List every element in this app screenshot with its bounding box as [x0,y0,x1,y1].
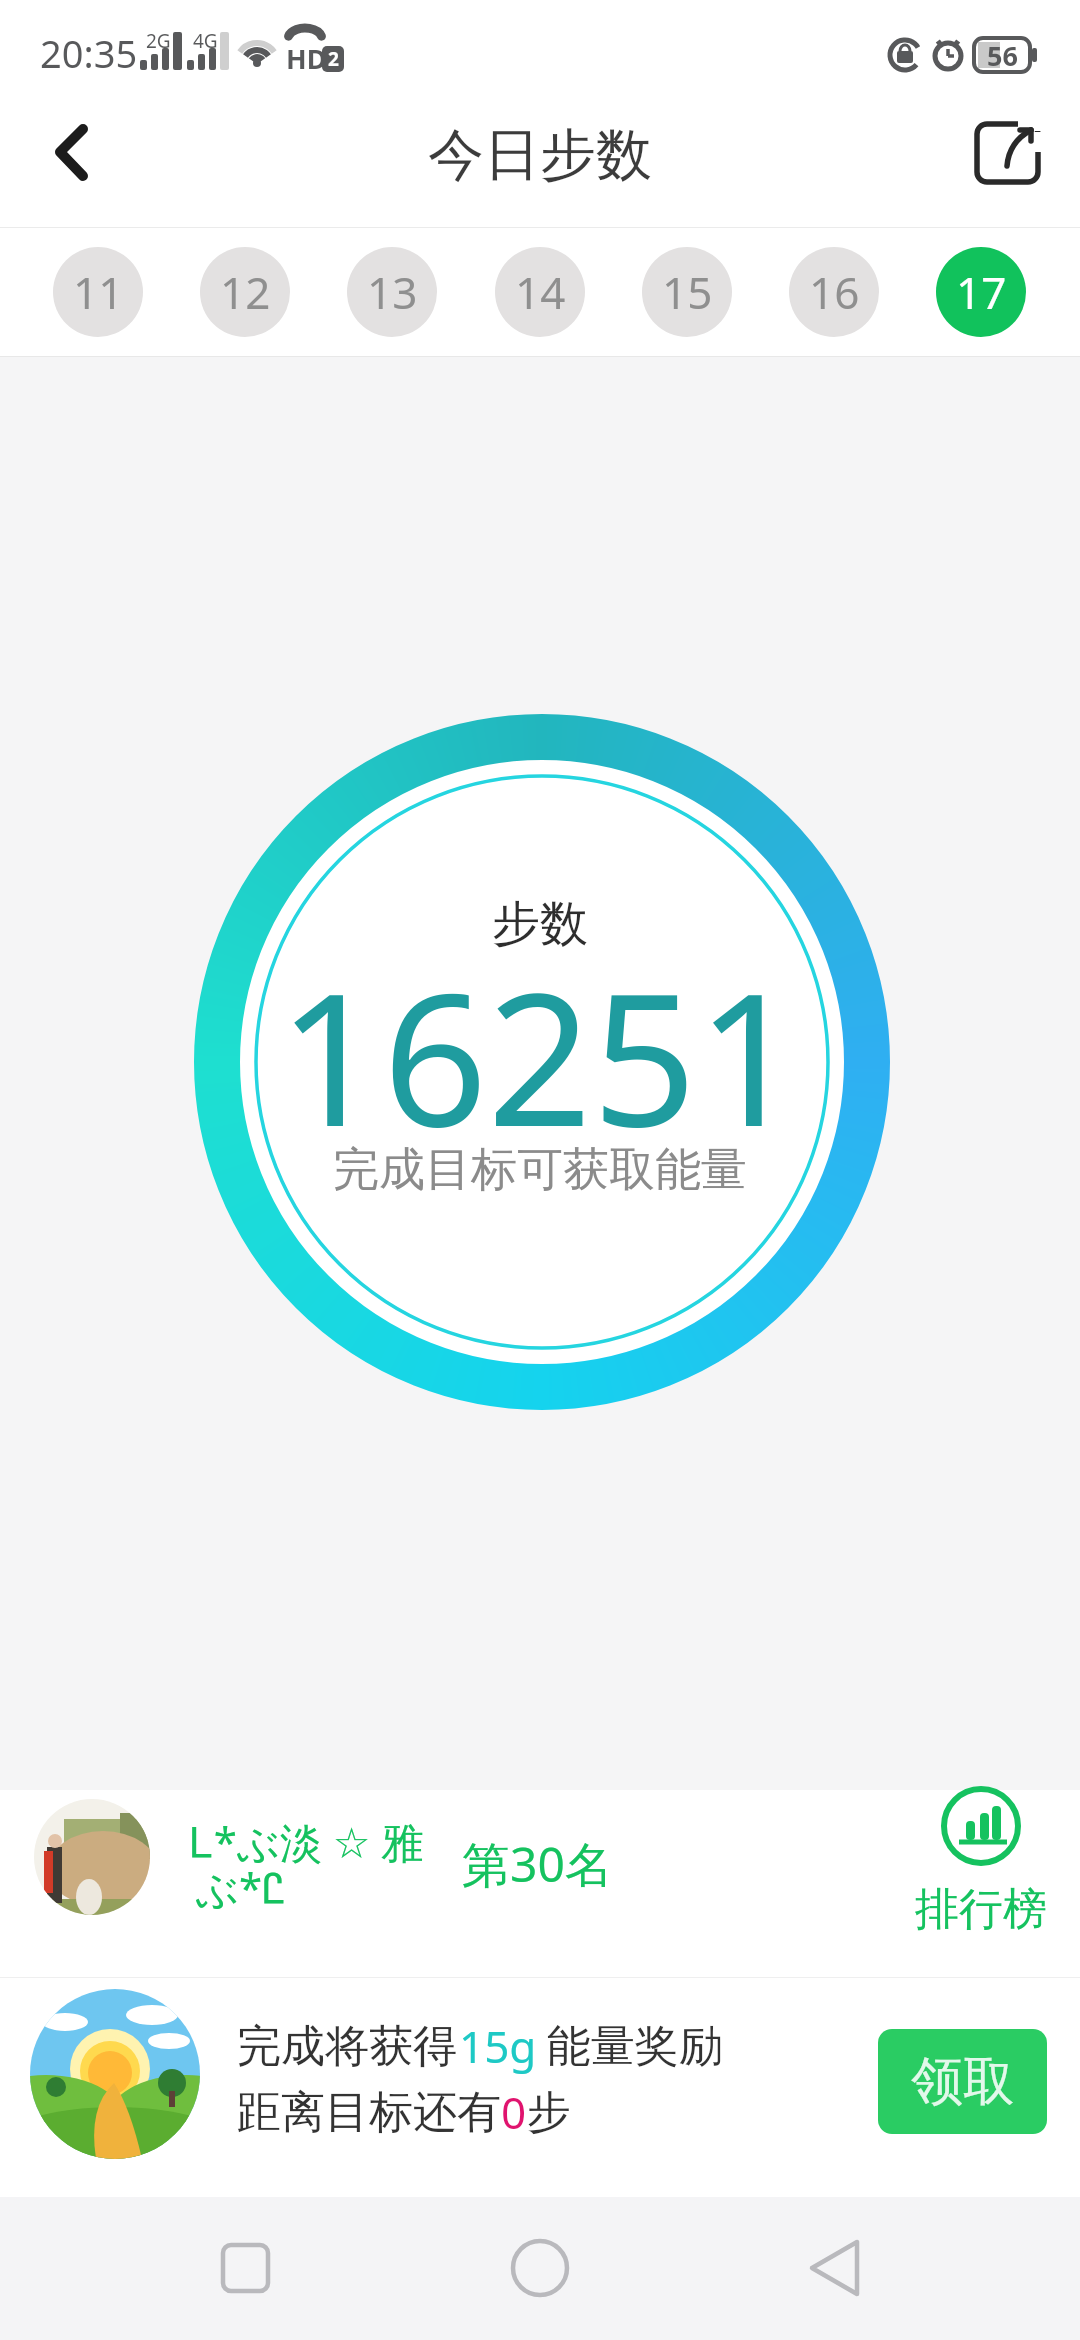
staticText: 20:35 [40,27,138,79]
button[interactable]: Ꮮ*ぶ淡 ☆ 雅 [0,1790,1080,1977]
button[interactable]: 16 [789,247,879,337]
staticText: HD [286,40,327,77]
staticText: 56 [987,37,1018,74]
staticText: 12 [220,262,271,322]
staticText: 距离目标还有 [237,2085,501,2140]
button[interactable]: 15 [642,247,732,337]
staticText: 完成目标可获取能量 [333,1141,747,1199]
button[interactable]: 12 [200,247,290,337]
staticText: 16251 [278,930,802,1179]
staticText: 步 [527,2085,571,2140]
button[interactable]: 11 [53,247,143,337]
staticText: 0 [501,2082,527,2142]
staticText: ぶ*Ꮭ [196,1859,286,1916]
staticText: 16 [809,262,860,322]
button[interactable] [30,120,100,190]
staticText: Ꮮ*ぶ淡 ☆ 雅 [190,1813,424,1870]
staticText: 第30名 [462,1831,613,1897]
button[interactable]: 领取 [878,2029,1047,2134]
button[interactable] [960,105,1060,205]
staticText: 17 [956,262,1007,322]
staticText: 14 [515,262,566,322]
button[interactable]: 14 [495,247,585,337]
button[interactable]: 13 [347,247,437,337]
staticText: 13 [367,262,418,322]
staticText: 15g [459,2016,537,2076]
staticText: 排行榜 [915,1882,1047,1937]
staticText: 步数 [492,894,588,954]
staticText: 15 [662,262,713,322]
button[interactable] [490,2215,590,2315]
button[interactable] [785,2215,885,2315]
staticText: 能量奖励 [547,2019,723,2074]
button[interactable]: 17 [936,247,1026,337]
staticText: 4G [193,28,218,54]
staticText: 11 [73,262,124,322]
staticText: 今日步数 [428,120,652,191]
button[interactable] [195,2215,295,2315]
staticText: 2 [328,46,339,72]
staticText: 领取 [911,2049,1015,2115]
staticText: 完成将获得 [237,2019,457,2074]
staticText: 2G [146,28,171,54]
